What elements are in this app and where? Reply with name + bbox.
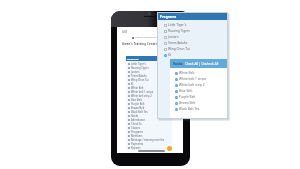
staticText: Kt <box>131 82 134 86</box>
staticText: Wing Chun Tui <box>131 78 149 82</box>
staticText: Teens/Adults <box>131 74 147 78</box>
button[interactable]: Purple Belt <box>126 102 172 106</box>
staticText: Reports <box>131 146 141 150</box>
staticText: White belt strip 2 <box>179 83 205 87</box>
staticText: Attendance <box>131 118 145 122</box>
staticText: Ranks: <box>173 62 184 66</box>
staticText: Brown Belt <box>179 101 196 105</box>
button[interactable]: Teens/Adults <box>126 74 172 78</box>
button[interactable]: Juniors <box>126 70 172 74</box>
button[interactable]: Address bar <box>117 36 183 39</box>
button[interactable]: Reports <box>126 146 172 150</box>
button[interactable]: Brown Belt <box>170 100 228 106</box>
staticText: Blue Belt <box>131 98 142 102</box>
button[interactable]: Purple Belt <box>170 94 228 100</box>
button[interactable]: Juniors <box>157 34 228 40</box>
staticText: Little Tiger's <box>131 62 146 66</box>
staticText: Message / training mini fee <box>131 138 165 142</box>
staticText: Teens/Adults <box>168 41 188 45</box>
staticText: White belt 1 stripe <box>179 77 207 81</box>
staticText: Kt <box>168 53 172 57</box>
button[interactable]: Programs <box>126 130 172 134</box>
staticText: Classes <box>131 126 140 130</box>
staticText: White Belt <box>131 86 144 90</box>
button[interactable]: White belt strip 2 <box>126 94 172 98</box>
button[interactable]: Roaring Tigers <box>157 28 228 34</box>
staticText: Ranks <box>131 114 139 118</box>
staticText: Blue Belt <box>179 89 193 93</box>
button[interactable]: Kt <box>157 52 228 58</box>
staticText: Brown Belt <box>131 106 145 110</box>
button[interactable]: Blue Belt <box>126 98 172 102</box>
button[interactable]: Blue Belt <box>170 88 228 94</box>
staticText: Programs <box>160 14 177 19</box>
button[interactable]: Programs <box>157 12 228 20</box>
button[interactable]: Payments <box>126 142 172 146</box>
staticText: Black Belt Tes. <box>131 110 149 114</box>
button[interactable]: Classes <box>126 126 172 130</box>
staticText: White belt 1 stripe <box>131 90 154 94</box>
button[interactable]: White belt 1 stripe <box>170 76 228 82</box>
button[interactable]: Message / training mini fee <box>126 138 172 142</box>
button[interactable]: Ranks: <box>170 59 228 68</box>
staticText: Roaring Tigers <box>131 66 149 70</box>
staticText: training-center.com/classes <box>135 36 164 39</box>
staticText: Wing Chun Tui <box>168 47 190 51</box>
staticText: Purple Belt <box>131 102 145 106</box>
staticText: White Belt <box>179 71 195 75</box>
staticText: Programs <box>131 130 143 134</box>
staticText: Juniors <box>131 70 140 74</box>
button[interactable]: Brown Belt <box>126 106 172 110</box>
button[interactable]: Teens/Adults <box>157 40 228 46</box>
staticText: Check In <box>131 122 142 126</box>
staticText: Members <box>131 134 143 138</box>
button[interactable]: Black Belt Tes. <box>126 110 172 114</box>
button[interactable]: White Belt <box>170 70 228 76</box>
staticText: 4:01 <box>122 30 128 34</box>
staticText: White belt strip 2 <box>131 94 152 98</box>
button[interactable]: Members <box>126 134 172 138</box>
button[interactable]: Little Tiger's <box>157 22 228 28</box>
button[interactable]: White belt strip 2 <box>170 82 228 88</box>
staticText: Programs <box>127 57 139 60</box>
button[interactable]: Roaring Tigers <box>126 66 172 70</box>
button[interactable]: Little Tiger's <box>126 62 172 66</box>
button[interactable]: Kt <box>126 82 172 86</box>
button[interactable]: Wing Chun Tui <box>126 78 172 82</box>
staticText: Gwen's Training Center <box>122 42 158 46</box>
staticText: Roaring Tigers <box>168 29 190 33</box>
button[interactable]: Attendance <box>126 118 172 122</box>
staticText: Juniors <box>168 35 179 39</box>
button[interactable]: Check In <box>126 122 172 126</box>
staticText: Check All | Uncheck All <box>185 62 219 66</box>
button[interactable]: Black Belt Tes. <box>170 106 228 112</box>
button[interactable]: White belt 1 stripe <box>126 90 172 94</box>
staticText: Purple Belt <box>179 95 196 99</box>
button[interactable]: Wing Chun Tui <box>157 46 228 52</box>
staticText: Black Belt Tes. <box>179 107 201 111</box>
button[interactable]: Chat <box>167 146 172 151</box>
button[interactable]: Programs <box>126 56 172 61</box>
button[interactable]: White Belt <box>126 86 172 90</box>
staticText: Little Tiger's <box>168 23 187 27</box>
staticText: Payments <box>131 142 144 146</box>
button[interactable]: Ranks <box>126 114 172 118</box>
